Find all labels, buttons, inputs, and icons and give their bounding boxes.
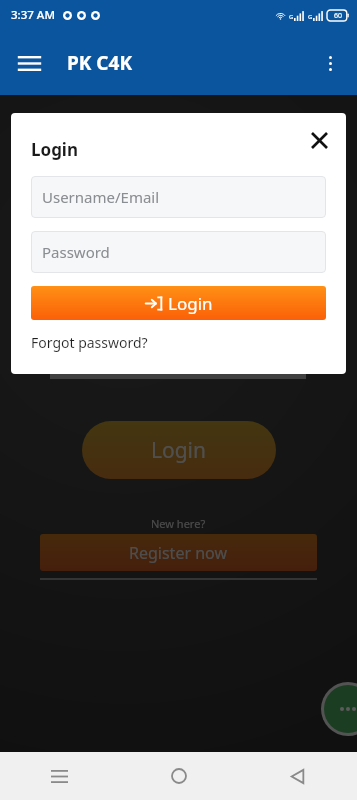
staticText: G	[308, 13, 313, 21]
button[interactable]: Home	[119, 752, 238, 800]
button[interactable]: Chat on WhatsApp	[324, 685, 357, 733]
button[interactable]: Login	[82, 421, 276, 479]
staticText: G	[289, 13, 294, 21]
button[interactable]: Username/Email	[31, 176, 326, 218]
button[interactable]: Register now	[40, 534, 317, 571]
staticText: Login	[31, 138, 79, 161]
staticText: Username/Email	[42, 187, 160, 207]
staticText: Enter	[90, 307, 131, 329]
button[interactable]: Password	[31, 231, 326, 273]
staticText: PK C4K	[67, 50, 133, 76]
button[interactable]: Recent apps	[0, 752, 119, 800]
staticText: Register now	[129, 542, 228, 564]
button[interactable]: Open navigation menu	[8, 42, 50, 84]
staticText: 3:37 AM	[11, 7, 55, 23]
staticText: Login	[168, 292, 213, 315]
button[interactable]: Login	[31, 286, 326, 320]
button[interactable]: Close	[302, 123, 336, 157]
staticText: 60	[334, 11, 343, 21]
staticText: Password	[42, 242, 110, 262]
button[interactable]: More options	[309, 42, 351, 84]
staticText: Forgot password?	[31, 333, 148, 352]
button[interactable]: Forgot password?	[31, 333, 148, 352]
button[interactable]: Back	[238, 752, 357, 800]
button[interactable]: Enter	[68, 299, 131, 337]
staticText: New here?	[151, 516, 206, 531]
staticText: Login	[151, 436, 207, 465]
